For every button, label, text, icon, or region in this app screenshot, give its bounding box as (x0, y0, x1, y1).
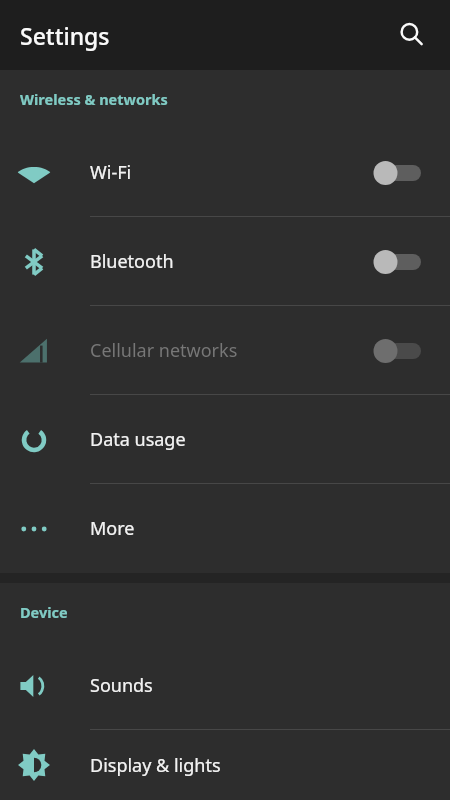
staticText: Device (20, 602, 68, 622)
button[interactable]: Data usage (0, 395, 450, 484)
button[interactable]: Wi-Fi (0, 128, 450, 217)
button[interactable]: Display & lights (0, 730, 450, 800)
staticText: Display & lights (90, 753, 450, 778)
button[interactable]: Cellular networks (0, 306, 450, 395)
staticText: Sounds (90, 673, 450, 698)
staticText: More (90, 516, 450, 541)
staticText: Wireless & networks (20, 89, 168, 109)
staticText: Settings (20, 20, 110, 51)
button[interactable]: Bluetooth (0, 217, 450, 306)
button[interactable]: Search (388, 11, 436, 59)
staticText: Bluetooth (90, 249, 373, 274)
staticText: Cellular networks (90, 338, 373, 363)
staticText: Data usage (90, 427, 450, 452)
button[interactable]: Sounds (0, 641, 450, 730)
button[interactable]: More (0, 484, 450, 573)
staticText: Wi-Fi (90, 160, 373, 185)
